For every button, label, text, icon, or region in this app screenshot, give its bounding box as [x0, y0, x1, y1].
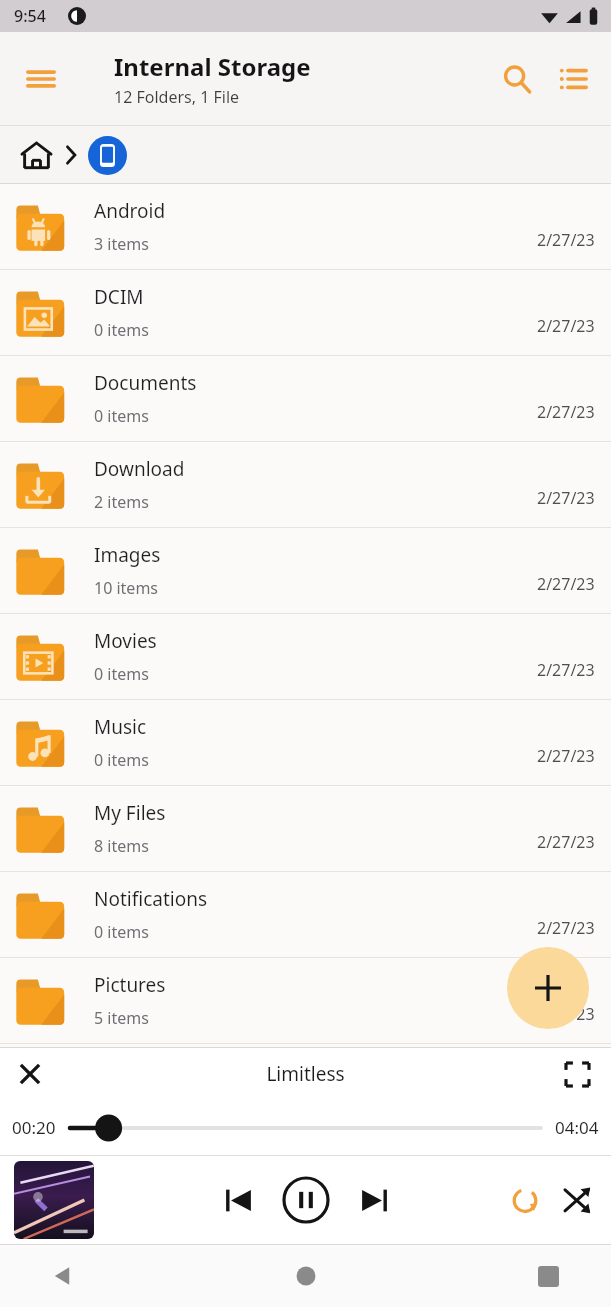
staticText: DCIM — [94, 284, 144, 310]
button[interactable]: Movies — [0, 614, 611, 700]
staticText: Notifications — [94, 886, 208, 912]
staticText: Music — [94, 714, 147, 740]
staticText: 0 items — [94, 405, 149, 427]
staticText: 2/27/23 — [537, 573, 595, 595]
staticText: 2/27/23 — [537, 229, 595, 251]
button[interactable]: Android — [0, 184, 611, 270]
staticText: Movies — [94, 628, 157, 654]
staticText: 2/27/23 — [537, 401, 595, 423]
staticText: 12 Folders, 1 File — [114, 86, 240, 108]
staticText: Documents — [94, 370, 197, 396]
staticText: Pictures — [94, 972, 166, 998]
button[interactable]: View options — [545, 51, 601, 107]
button[interactable]: Notifications — [0, 872, 611, 958]
button[interactable]: Home — [277, 1247, 335, 1305]
button[interactable]: Music — [0, 700, 611, 786]
button[interactable]: Back — [34, 1247, 92, 1305]
button[interactable]: Next — [346, 1172, 402, 1228]
button[interactable]: Pause — [276, 1170, 336, 1230]
staticText: 2/27/23 — [537, 315, 595, 337]
button[interactable]: My Files — [0, 786, 611, 872]
staticText: 2/27/23 — [537, 917, 595, 939]
button[interactable]: Shuffle — [551, 1174, 603, 1226]
button[interactable]: Recents — [519, 1247, 577, 1305]
staticText: Internal Storage — [114, 50, 311, 83]
staticText: 00:20 — [12, 1116, 56, 1139]
button[interactable]: Internal storage — [88, 136, 127, 175]
staticText: 5 items — [94, 1007, 149, 1029]
staticText: 0 items — [94, 663, 149, 685]
staticText: 2/27/23 — [537, 831, 595, 853]
button[interactable]: Fullscreen — [553, 1050, 601, 1098]
staticText: 8 items — [94, 835, 149, 857]
staticText: 2 items — [94, 491, 149, 513]
staticText: Download — [94, 456, 185, 482]
staticText: 2/27/23 — [537, 1003, 595, 1025]
button[interactable] — [70, 1113, 541, 1143]
staticText: Android — [94, 198, 166, 224]
staticText: 0 items — [94, 921, 149, 943]
button[interactable]: Download — [0, 442, 611, 528]
button[interactable]: Home — [14, 133, 58, 177]
staticText: 9:54 — [14, 5, 46, 27]
staticText: 0 items — [94, 749, 149, 771]
button[interactable]: Previous — [210, 1172, 266, 1228]
button[interactable]: Pictures — [0, 958, 611, 1044]
staticText: Limitless — [266, 1061, 345, 1087]
staticText: My Files — [94, 800, 166, 826]
button[interactable]: Images — [0, 528, 611, 614]
button[interactable]: DCIM — [0, 270, 611, 356]
button[interactable]: Menu — [16, 54, 66, 104]
staticText: 10 items — [94, 577, 159, 599]
staticText: Images — [94, 542, 161, 568]
button[interactable] — [14, 1161, 94, 1239]
button[interactable]: Documents — [0, 356, 611, 442]
button[interactable]: Repeat — [499, 1174, 551, 1226]
staticText: 0 items — [94, 319, 149, 341]
button[interactable]: Add — [507, 947, 589, 1029]
button[interactable]: Close player — [6, 1050, 54, 1098]
staticText: 04:04 — [555, 1116, 599, 1139]
staticText: 3 items — [94, 233, 149, 255]
staticText: 2/27/23 — [537, 487, 595, 509]
staticText: 2/27/23 — [537, 659, 595, 681]
button[interactable]: Search — [489, 51, 545, 107]
staticText: 2/27/23 — [537, 745, 595, 767]
